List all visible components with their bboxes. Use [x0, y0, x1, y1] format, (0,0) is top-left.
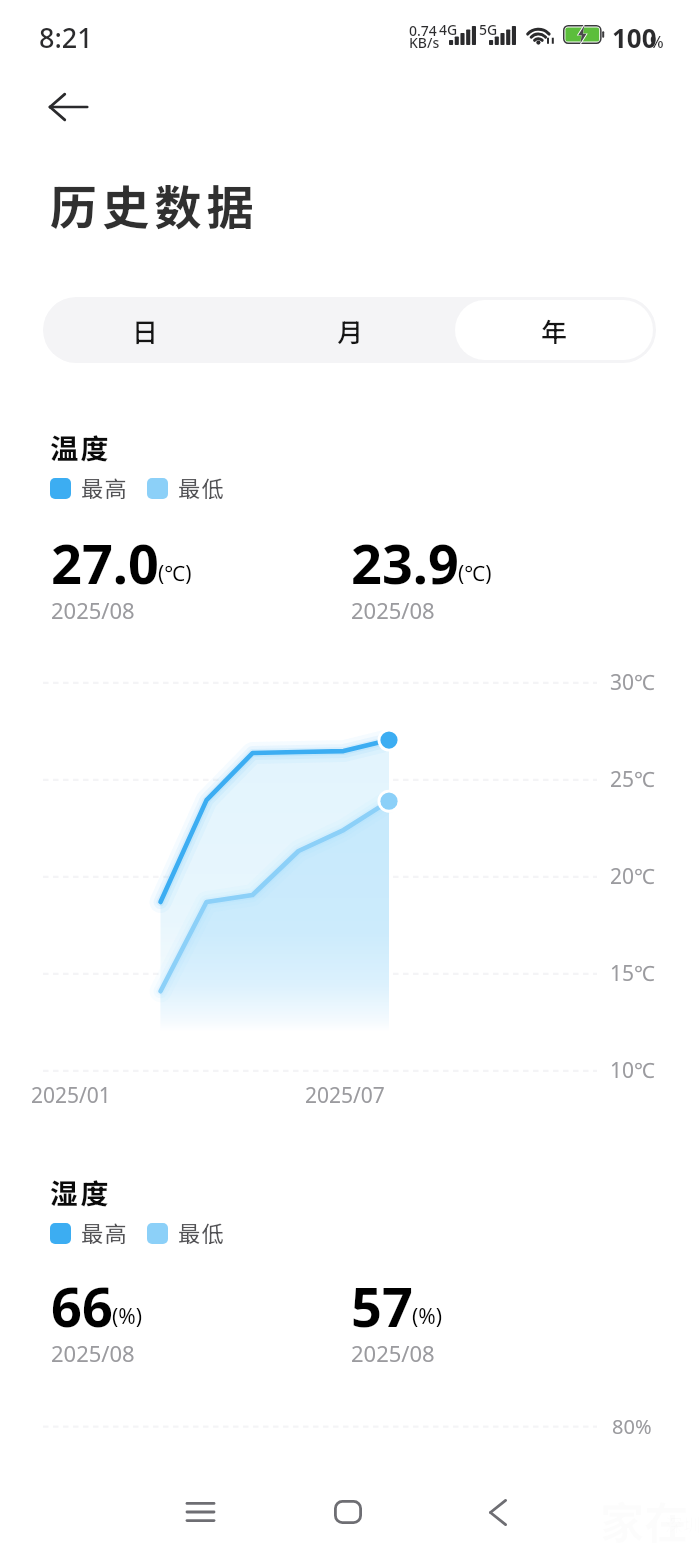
staticText: 最高 — [81, 1216, 129, 1248]
staticText: 0.74 — [409, 21, 437, 40]
staticText: 25℃ — [610, 765, 655, 794]
button[interactable]: 日 — [46, 300, 245, 360]
staticText: 30℃ — [610, 668, 655, 697]
staticText: (%) — [412, 1302, 443, 1331]
staticText: 最高 — [81, 471, 129, 503]
staticText: 年 — [541, 312, 568, 350]
button[interactable]: Go back — [458, 1472, 538, 1552]
staticText: 2025/01 — [31, 1081, 111, 1110]
staticText: 8:21 — [39, 19, 93, 56]
staticText: 日 — [132, 312, 159, 350]
staticText: 80% — [612, 1413, 652, 1440]
staticText: 2025/08 — [351, 1338, 435, 1368]
button[interactable]: Back — [40, 79, 96, 135]
staticText: 20℃ — [610, 862, 655, 891]
staticText: KB/s — [409, 33, 440, 52]
staticText: 2025/08 — [51, 1338, 135, 1368]
staticText: 10℃ — [610, 1056, 655, 1085]
staticText: 温度 — [50, 427, 111, 468]
staticText: 2025/08 — [351, 595, 435, 625]
staticText: (℃) — [458, 559, 492, 588]
button[interactable]: 年 — [455, 300, 653, 360]
staticText: 4G — [439, 20, 458, 39]
staticText: 最低 — [178, 1216, 226, 1248]
staticText: 100 — [612, 20, 657, 55]
button[interactable]: 月 — [251, 300, 449, 360]
staticText: 历史数据 — [50, 170, 259, 238]
staticText: 2025/07 — [305, 1081, 385, 1110]
staticText: 5G — [479, 20, 498, 39]
staticText: 23.9 — [351, 526, 459, 600]
staticText: 66 — [51, 1269, 113, 1343]
staticText: (℃) — [158, 559, 192, 588]
button[interactable]: Recent apps — [160, 1472, 240, 1552]
staticText: 湿度 — [50, 1172, 111, 1213]
staticText: 2025/08 — [51, 595, 135, 625]
button[interactable]: Home — [308, 1472, 388, 1552]
staticText: 月 — [337, 312, 364, 350]
staticText: 27.0 — [51, 526, 159, 600]
staticText: 最低 — [178, 471, 226, 503]
staticText: 57 — [351, 1269, 413, 1343]
staticText: 15℃ — [610, 959, 655, 988]
staticText: % — [650, 31, 664, 53]
staticText: (%) — [112, 1302, 143, 1331]
